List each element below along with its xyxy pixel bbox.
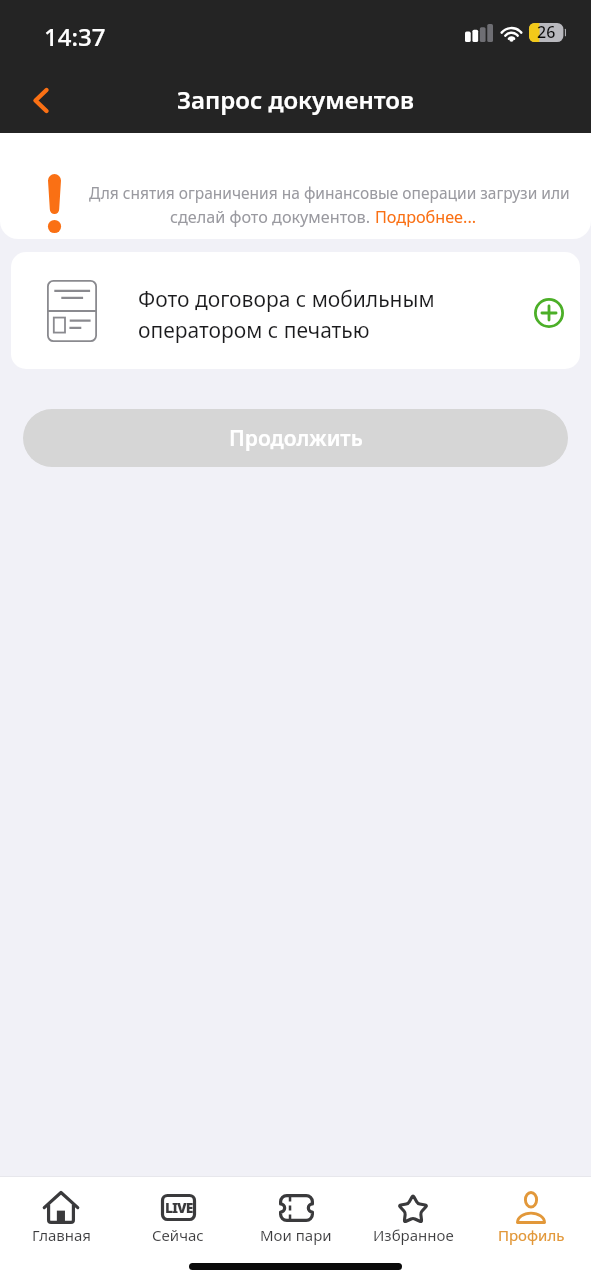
- button[interactable]: Фото договора с мобильным оператором с п…: [11, 252, 580, 369]
- staticText: Для снятия ограничения на финансовые опе…: [89, 182, 570, 203]
- button[interactable]: Подробнее...: [375, 206, 477, 228]
- button[interactable]: Back: [18, 77, 64, 123]
- staticText: сделай фото документов.: [170, 206, 375, 228]
- button[interactable]: Избранное: [356, 1177, 470, 1252]
- staticText: LIVE: [165, 1198, 193, 1217]
- button[interactable]: Профиль: [474, 1177, 588, 1252]
- staticText: Продолжить: [229, 424, 363, 453]
- button[interactable]: Главная: [4, 1177, 118, 1252]
- button[interactable]: Мои пари: [239, 1177, 353, 1252]
- staticText: Главная: [32, 1225, 91, 1245]
- staticText: 26: [537, 21, 556, 43]
- staticText: 14:37: [44, 20, 106, 53]
- button[interactable]: LIVE: [121, 1177, 235, 1252]
- button[interactable]: Продолжить: [23, 409, 568, 467]
- button[interactable]: Add document: [528, 290, 570, 332]
- staticText: Профиль: [498, 1225, 565, 1245]
- staticText: Мои пари: [260, 1225, 332, 1245]
- staticText: Избранное: [373, 1225, 454, 1245]
- staticText: Фото договора с мобильным оператором с п…: [138, 285, 515, 344]
- staticText: Запрос документов: [177, 83, 414, 116]
- staticText: Сейчас: [152, 1225, 204, 1245]
